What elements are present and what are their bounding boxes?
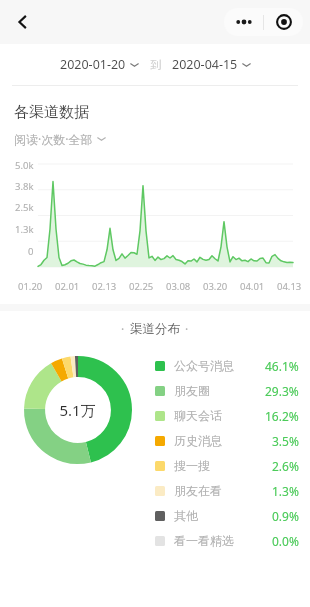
staticText: 聊天会话 — [174, 408, 222, 423]
staticText: 历史消息 — [174, 433, 222, 448]
staticText: · — [185, 321, 189, 337]
button[interactable]: 2020-01-20 — [60, 56, 139, 73]
staticText: 46.1% — [265, 358, 299, 374]
staticText: 0.9% — [272, 508, 299, 524]
staticText: 3.5% — [272, 433, 299, 449]
staticText: 阅读·次数·全部 — [14, 131, 93, 147]
staticText: 朋友圈 — [174, 383, 210, 398]
staticText: 公众号消息 — [174, 358, 234, 373]
staticText: · — [121, 321, 125, 337]
button[interactable]: 公众号消息 — [155, 353, 299, 378]
staticText: 5.0k — [15, 159, 34, 172]
button[interactable]: 阅读·次数·全部 — [14, 131, 106, 147]
button[interactable]: 2020-04-15 — [172, 56, 251, 73]
button[interactable]: 历史消息 — [155, 428, 299, 453]
staticText: 看一看精选 — [174, 533, 234, 548]
button[interactable]: 朋友在看 — [155, 478, 299, 503]
staticText: 5.1万 — [59, 400, 96, 420]
staticText: 02.01 — [55, 280, 80, 293]
button[interactable]: 其他 — [155, 503, 299, 528]
staticText: 渠道分布 — [130, 321, 180, 337]
staticText: 29.3% — [265, 383, 299, 399]
staticText: 1.3k — [15, 223, 34, 236]
staticText: 其他 — [174, 508, 198, 523]
button[interactable]: 聊天会话 — [155, 403, 299, 428]
staticText: 0.0% — [272, 533, 299, 549]
staticText: 02.13 — [92, 280, 117, 293]
button[interactable]: 看一看精选 — [155, 528, 299, 553]
staticText: 各渠道数据 — [14, 103, 89, 122]
staticText: 2020-01-20 — [60, 56, 126, 73]
staticText: 16.2% — [265, 408, 299, 424]
staticText: 0 — [28, 245, 34, 258]
staticText: 3.8k — [15, 180, 34, 193]
staticText: 朋友在看 — [174, 483, 222, 498]
staticText: 04.01 — [240, 280, 265, 293]
staticText: 02.25 — [129, 280, 154, 293]
staticText: 到 — [150, 58, 161, 72]
staticText: 1.3% — [272, 483, 299, 499]
staticText: 2.6% — [272, 458, 299, 474]
staticText: 01.20 — [18, 280, 43, 293]
button[interactable]: More — [224, 8, 263, 36]
button[interactable]: Back — [6, 5, 40, 39]
button[interactable]: Close — [264, 8, 303, 36]
button[interactable]: 朋友圈 — [155, 378, 299, 403]
staticText: 搜一搜 — [174, 458, 210, 473]
staticText: 03.20 — [203, 280, 228, 293]
button[interactable]: 搜一搜 — [155, 453, 299, 478]
staticText: 03.08 — [166, 280, 191, 293]
staticText: 04.13 — [277, 280, 302, 293]
staticText: 2.5k — [15, 201, 34, 214]
staticText: 2020-04-15 — [172, 56, 238, 73]
